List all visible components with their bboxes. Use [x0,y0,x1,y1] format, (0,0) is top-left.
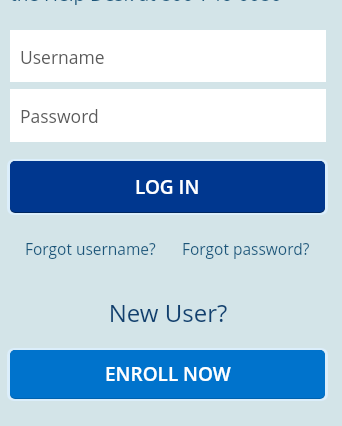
button[interactable]: Forgot password? [182,238,310,259]
button[interactable]: Username [10,30,326,82]
staticText: the Help Desk at 800-746-0080 [10,0,282,7]
button[interactable]: LOG IN [7,159,328,215]
staticText: Forgot password? [182,238,310,259]
staticText: LOG IN [135,174,200,200]
button[interactable]: ENROLL NOW [7,348,328,401]
staticText: ENROLL NOW [105,361,231,387]
button[interactable]: Password [10,89,326,142]
staticText: Username [20,45,105,69]
staticText: New User? [10,296,326,329]
staticText: Forgot username? [25,238,156,259]
staticText: Password [20,104,99,128]
button[interactable]: Forgot username? [25,238,156,259]
